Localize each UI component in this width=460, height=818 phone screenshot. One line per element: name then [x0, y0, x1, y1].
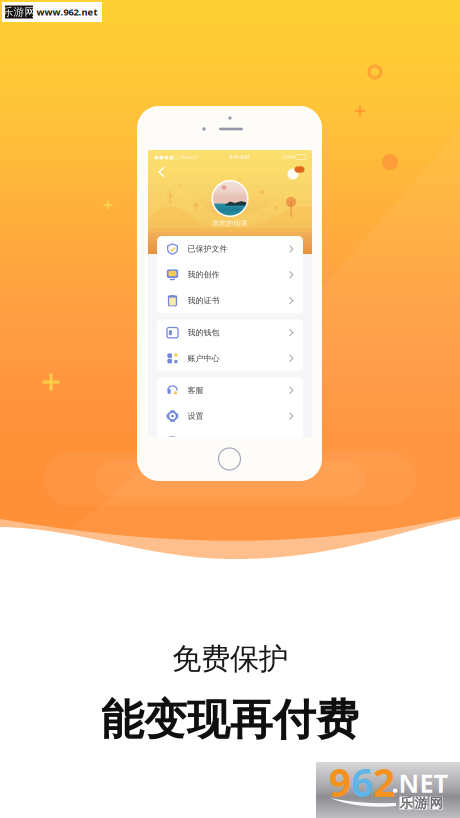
staticText: ●●●●○ Sketch [154, 153, 197, 161]
staticText: 设置 [187, 411, 203, 421]
staticText: 已保护文件 [187, 244, 227, 254]
staticText: 免费保护 [172, 641, 288, 677]
button[interactable]: 关于我们 [157, 429, 303, 455]
staticText: .NET [391, 766, 448, 800]
staticText: 9:41 AM [229, 153, 249, 161]
staticText: 我的钱包 [187, 328, 219, 337]
button[interactable]: 我的创作 [157, 262, 303, 288]
staticText: 能变现再付费 [101, 694, 359, 746]
button[interactable]: Back [156, 166, 167, 178]
staticText: 我的创作 [187, 270, 219, 280]
staticText: 我的证书 [187, 296, 219, 305]
button[interactable]: 我的钱包 [157, 320, 303, 345]
button[interactable]: 已保护文件 [157, 236, 303, 262]
button[interactable]: 客服 [157, 377, 303, 403]
staticText: 账户中心 [187, 353, 219, 363]
staticText: 您您的仙境 [212, 219, 247, 227]
staticText: 客服 [187, 385, 203, 395]
staticText: 乐 [399, 795, 412, 811]
staticText: 6 [351, 756, 373, 808]
staticText: 9 [329, 756, 351, 808]
staticText: 2 [373, 756, 395, 808]
staticText: www.962.net [36, 6, 97, 18]
staticText: 网 [429, 795, 442, 811]
button[interactable]: 账户中心 [157, 345, 303, 371]
staticText: 游 [414, 795, 427, 811]
button[interactable]: 设置 [157, 403, 303, 429]
button[interactable]: Messages [286, 164, 305, 179]
button[interactable]: 我的证书 [157, 288, 303, 313]
staticText: 100% [281, 153, 294, 161]
staticText: 乐游网 [2, 5, 35, 18]
